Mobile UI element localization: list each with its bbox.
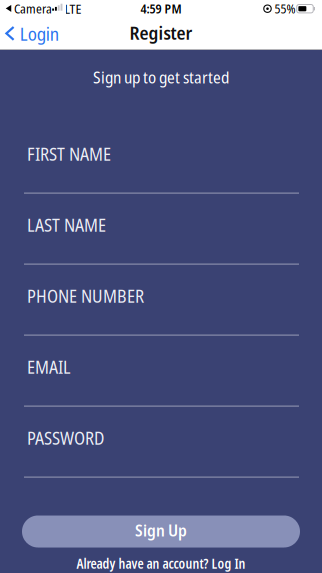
button[interactable]: Sign Up xyxy=(22,515,300,547)
button[interactable]: PHONE NUMBER xyxy=(24,284,299,336)
staticText: FIRST NAME xyxy=(27,142,111,166)
staticText: LAST NAME xyxy=(27,213,106,237)
staticText: PHONE NUMBER xyxy=(27,284,144,308)
staticText: Sign up to get started xyxy=(93,66,229,88)
staticText: Already have an account? Log In xyxy=(76,554,245,573)
button[interactable]: Already have an account? Log In xyxy=(76,554,245,573)
staticText: Register xyxy=(129,20,192,45)
staticText: PASSWORD xyxy=(27,426,104,450)
button[interactable]: LAST NAME xyxy=(24,213,299,265)
staticText: Camera xyxy=(14,0,52,17)
staticText: EMAIL xyxy=(27,355,71,379)
staticText: Login xyxy=(20,21,59,46)
staticText: 4:59 PM xyxy=(140,0,181,17)
staticText: 55% xyxy=(274,0,295,17)
button[interactable]: Login xyxy=(5,21,59,46)
button[interactable]: EMAIL xyxy=(24,355,299,407)
button[interactable]: PASSWORD xyxy=(24,426,299,478)
staticText: LTE xyxy=(64,0,81,18)
staticText: Sign Up xyxy=(135,519,187,541)
button[interactable]: FIRST NAME xyxy=(24,142,299,194)
